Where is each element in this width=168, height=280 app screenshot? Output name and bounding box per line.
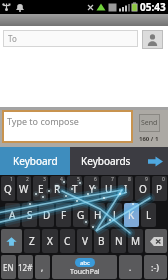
button[interactable]: V — [77, 229, 92, 253]
staticText: 12# — [18, 262, 33, 273]
staticText: 1 — [10, 176, 13, 183]
staticText: B — [98, 234, 105, 248]
button[interactable]: EN — [1, 255, 16, 279]
button[interactable]: Send — [139, 114, 160, 132]
button[interactable]: To — [3, 30, 138, 47]
button[interactable]: . — [119, 255, 142, 279]
button[interactable]: M — [128, 229, 143, 253]
staticText: P — [156, 182, 163, 196]
button[interactable]: C — [60, 229, 75, 253]
button[interactable]: Z — [24, 229, 40, 253]
staticText: , — [41, 262, 44, 273]
button[interactable]: J — [107, 203, 122, 227]
staticText: X — [47, 234, 53, 248]
button[interactable]: W — [17, 176, 31, 201]
staticText: R — [54, 182, 61, 196]
staticText: TouchPal — [70, 267, 100, 277]
staticText: 5 — [77, 176, 80, 183]
staticText: Q — [4, 182, 12, 196]
staticText: I — [124, 182, 128, 196]
button[interactable]: P — [152, 176, 167, 201]
button[interactable]: Pick contact — [142, 30, 163, 49]
button[interactable]: Keyboard — [0, 147, 70, 175]
staticText: W — [19, 182, 29, 196]
staticText: N — [115, 234, 123, 248]
button[interactable]: A — [5, 203, 20, 227]
staticText: abc — [80, 259, 90, 267]
staticText: G — [77, 208, 85, 222]
staticText: S — [27, 208, 33, 222]
staticText: 05:43 — [140, 0, 166, 14]
staticText: 7 — [111, 176, 114, 183]
staticText: A — [9, 208, 16, 222]
staticText: U — [105, 182, 113, 196]
button[interactable]: X — [42, 229, 58, 253]
staticText: EN — [3, 262, 14, 273]
button[interactable]: , — [35, 255, 50, 279]
staticText: To — [8, 33, 17, 44]
staticText: F — [61, 208, 67, 222]
button[interactable] — [145, 229, 167, 253]
button[interactable]: L — [141, 203, 156, 227]
staticText: Keyboards — [81, 154, 131, 168]
staticText: 8 — [128, 176, 131, 183]
staticText: 2 — [26, 176, 29, 183]
button[interactable]: N — [111, 229, 126, 253]
button[interactable]: Next — [142, 147, 168, 175]
staticText: Send — [141, 118, 158, 128]
button[interactable]: I — [118, 176, 133, 201]
staticText: 6 — [94, 176, 97, 183]
staticText: L — [146, 208, 152, 222]
staticText: E — [38, 182, 44, 196]
staticText: T — [72, 182, 78, 196]
button[interactable]: F — [56, 203, 71, 227]
button[interactable]: H — [90, 203, 105, 227]
staticText: 4 — [60, 176, 63, 183]
staticText: 9 — [145, 176, 148, 183]
button[interactable]: S — [22, 203, 37, 227]
staticText: J — [113, 208, 116, 222]
button[interactable]: E — [33, 176, 48, 201]
staticText: . — [129, 262, 132, 273]
button[interactable]: T — [67, 176, 82, 201]
staticText: V — [82, 234, 88, 248]
button[interactable]: :-) — [144, 255, 167, 279]
button[interactable]: O — [135, 176, 150, 201]
staticText: Z — [29, 234, 35, 248]
staticText: C — [64, 234, 71, 248]
button[interactable]: Q — [1, 176, 15, 201]
staticText: H — [94, 208, 102, 222]
button[interactable]: K — [124, 203, 139, 227]
button[interactable]: abc — [52, 255, 117, 279]
button[interactable]: Type to compose — [4, 112, 131, 141]
staticText: :-) — [151, 261, 160, 273]
staticText: Y — [89, 182, 95, 196]
button[interactable]: G — [73, 203, 88, 227]
button[interactable]: Y — [84, 176, 99, 201]
button[interactable]: Keyboards — [70, 147, 142, 175]
button[interactable]: B — [94, 229, 109, 253]
button[interactable] — [1, 229, 22, 253]
staticText: M — [131, 234, 141, 248]
staticText: 3 — [43, 176, 46, 183]
staticText: O — [139, 182, 147, 196]
staticText: 160 / 1 — [139, 135, 159, 143]
button[interactable]: 12# — [18, 255, 33, 279]
button[interactable]: D — [39, 203, 54, 227]
staticText: Keyboard — [13, 154, 58, 168]
button[interactable]: R — [50, 176, 65, 201]
staticText: 0 — [162, 176, 165, 183]
staticText: D — [43, 208, 51, 222]
button[interactable]: U — [101, 176, 116, 201]
staticText: Type to compose — [7, 115, 79, 127]
staticText: K — [128, 208, 135, 222]
